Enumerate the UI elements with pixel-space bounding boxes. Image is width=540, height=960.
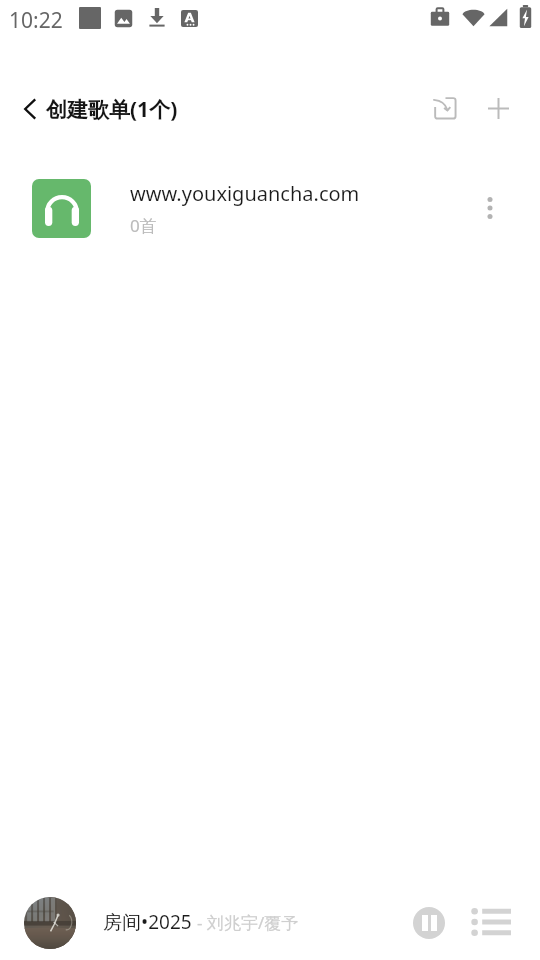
button[interactable]: Playing queue <box>467 898 515 946</box>
button[interactable]: More options <box>462 180 518 236</box>
staticText: 0首 <box>130 214 157 237</box>
staticText: 房间•2025 <box>103 909 192 935</box>
staticText: 创建歌单(1个) <box>46 95 178 124</box>
button[interactable]: Create playlist <box>474 84 522 132</box>
staticText: - 刘兆宇/覆予 <box>197 911 299 934</box>
button[interactable]: Now playing cover <box>24 897 76 949</box>
button[interactable]: Back <box>6 85 54 133</box>
staticText: www.youxiguancha.com <box>130 180 360 207</box>
button[interactable]: Import playlist <box>421 84 469 132</box>
staticText: 10:22 <box>9 6 63 35</box>
button[interactable]: Pause <box>405 899 453 947</box>
button[interactable]: www.youxiguancha.com <box>0 168 540 248</box>
